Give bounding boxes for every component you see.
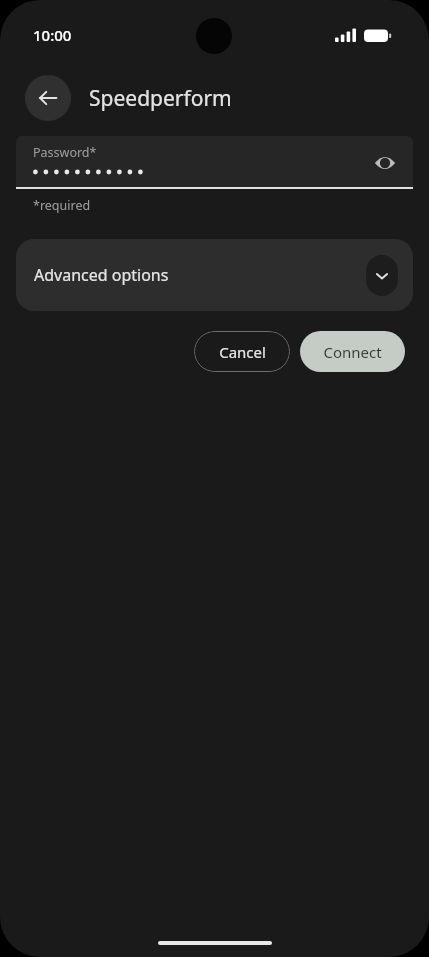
button[interactable]: Show password	[365, 143, 405, 183]
button[interactable]: Expand advanced options	[366, 255, 398, 296]
button[interactable]: Cancel	[194, 331, 290, 372]
staticText: Password*	[33, 144, 97, 161]
button[interactable]: Advanced options	[16, 239, 413, 311]
staticText: Connect	[323, 342, 382, 362]
staticText: Cancel	[219, 342, 266, 362]
staticText: Speedperform	[89, 84, 232, 113]
button[interactable]: Back	[25, 75, 71, 121]
staticText: 10:00	[33, 25, 72, 45]
staticText: Advanced options	[34, 264, 169, 286]
button[interactable]: Connect	[300, 331, 405, 372]
button[interactable]: Password*	[16, 136, 413, 189]
staticText: *required	[33, 197, 91, 214]
